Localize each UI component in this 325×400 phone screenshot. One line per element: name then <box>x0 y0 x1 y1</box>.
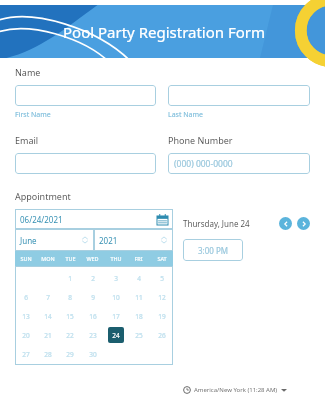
button[interactable] <box>15 85 156 106</box>
staticText: 2021 <box>99 235 118 246</box>
staticText: 1 <box>68 274 72 283</box>
button[interactable]: 21 <box>40 327 56 343</box>
staticText: 9 <box>91 293 95 302</box>
staticText: June <box>20 235 37 246</box>
staticText: 28 <box>44 350 52 359</box>
button[interactable]: 30 <box>85 346 101 362</box>
button[interactable]: 12 <box>154 289 170 305</box>
button[interactable]: 25 <box>131 327 147 343</box>
button[interactable]: 06/24/2021 <box>15 209 173 229</box>
staticText: 11 <box>135 293 143 302</box>
staticText: 8 <box>68 293 72 302</box>
button[interactable]: 3 <box>108 270 124 286</box>
staticText: 13 <box>22 312 30 321</box>
button[interactable]: Previous day <box>279 217 292 230</box>
staticText: Email <box>15 134 39 146</box>
button[interactable]: 6 <box>18 289 34 305</box>
staticText: 30 <box>89 350 97 359</box>
staticText: 25 <box>135 331 143 340</box>
button[interactable]: Open calendar <box>157 214 168 225</box>
button[interactable]: 23 <box>85 327 101 343</box>
staticText: 22 <box>66 331 74 340</box>
staticText: 18 <box>135 312 143 321</box>
staticText: 15 <box>66 312 74 321</box>
staticText: TUE <box>65 255 76 262</box>
button[interactable]: (000) 000-0000 <box>168 153 310 174</box>
staticText: 7 <box>46 293 50 302</box>
button[interactable]: 27 <box>18 346 34 362</box>
button[interactable]: 8 <box>62 289 78 305</box>
staticText: America/New York (11:28 AM) <box>194 386 278 394</box>
button[interactable] <box>15 153 156 174</box>
staticText: 16 <box>89 312 97 321</box>
staticText: 06/24/2021 <box>20 214 63 225</box>
button[interactable]: America/New York (11:28 AM) <box>183 386 310 394</box>
button[interactable]: 17 <box>108 308 124 324</box>
staticText: Last Name <box>168 110 204 120</box>
staticText: 2 <box>91 274 95 283</box>
button[interactable]: 7 <box>40 289 56 305</box>
button[interactable]: 2 <box>85 270 101 286</box>
staticText: SAT <box>157 255 167 262</box>
button[interactable]: 9 <box>85 289 101 305</box>
staticText: SUN <box>20 255 32 262</box>
button[interactable]: Next day <box>297 217 310 230</box>
other: Change 2021 <box>160 236 168 244</box>
button[interactable]: 3:00 PM <box>183 239 243 261</box>
button[interactable]: 16 <box>85 308 101 324</box>
staticText: 26 <box>158 331 166 340</box>
button[interactable]: 14 <box>40 308 56 324</box>
staticText: FRI <box>134 255 143 262</box>
staticText: (000) 000-0000 <box>174 158 233 170</box>
button[interactable]: 28 <box>40 346 56 362</box>
staticText: 19 <box>158 312 166 321</box>
staticText: 23 <box>89 331 97 340</box>
staticText: Pool Party Registration Form <box>63 22 266 42</box>
button[interactable]: 1 <box>62 270 78 286</box>
button[interactable] <box>168 85 310 106</box>
staticText: 27 <box>22 350 30 359</box>
staticText: THU <box>110 255 122 262</box>
staticText: 20 <box>22 331 30 340</box>
staticText: 6 <box>24 293 28 302</box>
button[interactable]: 24 <box>108 327 124 343</box>
button[interactable]: 11 <box>131 289 147 305</box>
button[interactable]: 2021 <box>94 229 173 251</box>
button[interactable]: 10 <box>108 289 124 305</box>
button[interactable]: 19 <box>154 308 170 324</box>
button[interactable]: 13 <box>18 308 34 324</box>
button[interactable]: 15 <box>62 308 78 324</box>
staticText: 3 <box>114 274 118 283</box>
staticText: 24 <box>112 331 120 340</box>
staticText: 29 <box>66 350 74 359</box>
staticText: 14 <box>44 312 52 321</box>
staticText: MON <box>41 255 55 262</box>
button[interactable]: 4 <box>131 270 147 286</box>
staticText: 4 <box>137 274 141 283</box>
button[interactable]: 18 <box>131 308 147 324</box>
staticText: Name <box>15 66 41 78</box>
staticText: Phone Number <box>168 134 233 146</box>
staticText: Thursday, June 24 <box>183 218 250 229</box>
staticText: 12 <box>158 293 166 302</box>
staticText: Appointment <box>15 190 71 202</box>
button[interactable]: 26 <box>154 327 170 343</box>
other: Change June <box>81 236 89 244</box>
staticText: 21 <box>44 331 52 340</box>
button[interactable]: 29 <box>62 346 78 362</box>
staticText: 5 <box>160 274 164 283</box>
staticText: 3:00 PM <box>198 245 229 256</box>
staticText: 17 <box>112 312 120 321</box>
button[interactable]: 22 <box>62 327 78 343</box>
staticText: 10 <box>112 293 120 302</box>
button[interactable]: June <box>15 229 94 251</box>
button[interactable]: 20 <box>18 327 34 343</box>
staticText: WED <box>86 255 99 262</box>
staticText: First Name <box>15 110 51 120</box>
button[interactable]: 5 <box>154 270 170 286</box>
